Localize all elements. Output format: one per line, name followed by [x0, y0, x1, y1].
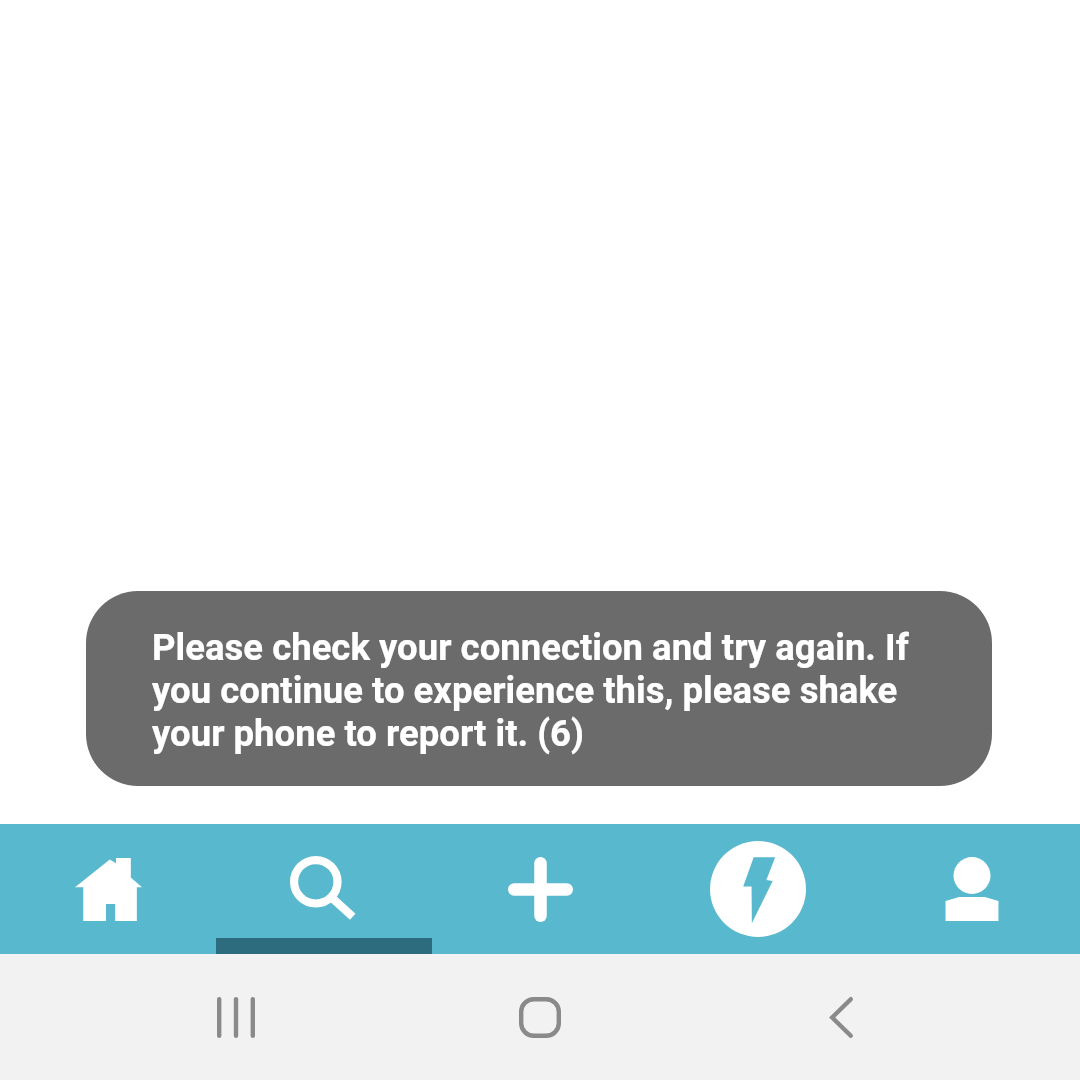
button[interactable]: Flash [648, 824, 864, 954]
button[interactable]: Profile [864, 824, 1080, 954]
button[interactable]: Home [0, 824, 216, 954]
button[interactable]: Search [216, 824, 432, 954]
button[interactable]: Back [766, 954, 916, 1080]
button[interactable]: Recent apps [161, 954, 311, 1080]
button[interactable]: Home [465, 954, 615, 1080]
staticText: Please check your connection and try aga… [152, 626, 992, 755]
button[interactable]: Add [432, 824, 648, 954]
